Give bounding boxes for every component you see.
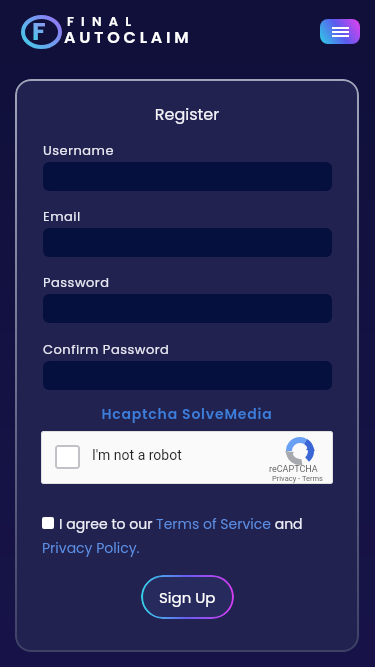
staticText: Confirm Password bbox=[43, 340, 170, 358]
staticText: Email bbox=[43, 207, 81, 225]
staticText: AUTOCLAIM bbox=[64, 26, 193, 48]
button[interactable] bbox=[42, 517, 54, 529]
button[interactable]: I'm not a robot bbox=[41, 431, 333, 484]
staticText: reCAPTCHA bbox=[269, 464, 318, 475]
button[interactable]: Privacy Policy. bbox=[42, 538, 140, 558]
staticText: Register bbox=[15, 103, 359, 125]
staticText: FINAL bbox=[67, 12, 139, 30]
staticText: Sign Up bbox=[159, 587, 216, 608]
button[interactable]: Hcaptcha SolveMedia bbox=[15, 404, 359, 424]
staticText: Username bbox=[43, 141, 115, 159]
button[interactable] bbox=[320, 19, 360, 44]
staticText: Password bbox=[43, 273, 110, 291]
staticText: I'm not a robot bbox=[92, 447, 182, 463]
button[interactable]: Sign Up bbox=[141, 575, 234, 619]
button[interactable]: I agree to our Terms of Service and bbox=[59, 514, 307, 534]
staticText: Privacy - Terms bbox=[272, 474, 323, 483]
staticText: F bbox=[32, 14, 46, 49]
